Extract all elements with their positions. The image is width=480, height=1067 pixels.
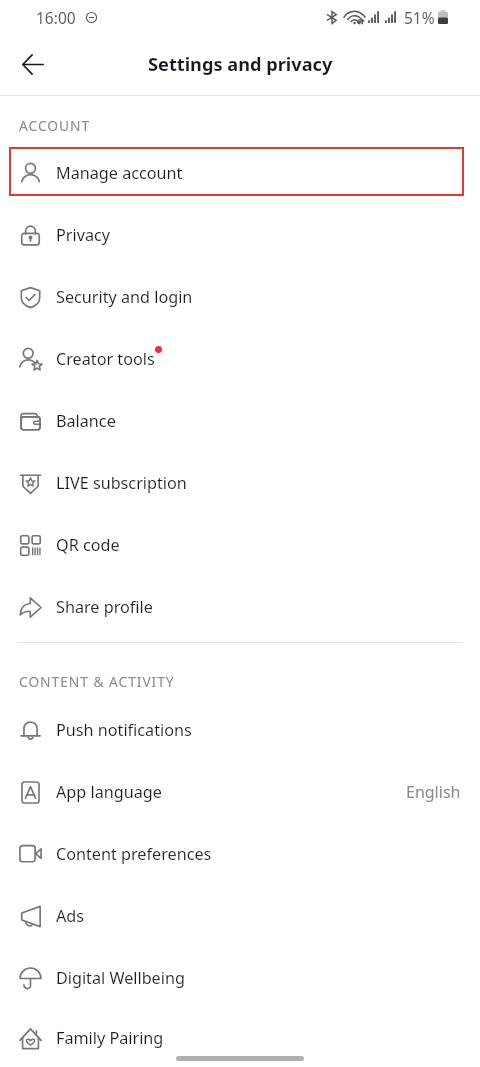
staticText: Push notifications — [56, 719, 192, 741]
button[interactable]: Ads — [0, 885, 480, 947]
button[interactable]: Family Pairing — [0, 1009, 480, 1067]
button[interactable]: Security and login — [0, 266, 480, 328]
button[interactable]: Share profile — [0, 576, 480, 638]
staticText: Balance — [56, 410, 116, 432]
staticText: CONTENT & ACTIVITY — [19, 672, 175, 691]
staticText: Privacy — [56, 224, 110, 246]
button[interactable]: Manage account — [0, 142, 480, 204]
staticText: Content preferences — [56, 843, 212, 865]
button[interactable]: Creator tools — [0, 328, 480, 390]
staticText: Digital Wellbeing — [56, 967, 185, 989]
staticText: App language — [56, 781, 162, 803]
button[interactable]: Push notifications — [0, 699, 480, 761]
button[interactable]: Digital Wellbeing — [0, 947, 480, 1009]
staticText: Ads — [56, 905, 85, 927]
staticText: English — [406, 781, 461, 803]
button[interactable]: LIVE subscription — [0, 452, 480, 514]
staticText: LIVE subscription — [56, 472, 187, 494]
staticText: 16:00 — [36, 7, 76, 28]
staticText: Creator tools — [56, 348, 155, 370]
button[interactable]: Back — [10, 41, 56, 87]
staticText: ACCOUNT — [19, 116, 91, 135]
staticText: QR code — [56, 534, 120, 556]
button[interactable]: Balance — [0, 390, 480, 452]
staticText: Security and login — [56, 286, 193, 308]
staticText: Manage account — [56, 162, 183, 184]
staticText: 51% — [404, 7, 435, 28]
button[interactable]: Content preferences — [0, 823, 480, 885]
staticText: Family Pairing — [56, 1027, 164, 1049]
staticText: Share profile — [56, 596, 153, 618]
button[interactable]: Privacy — [0, 204, 480, 266]
button[interactable]: QR code — [0, 514, 480, 576]
staticText: Settings and privacy — [148, 52, 333, 77]
button[interactable]: App language — [0, 761, 480, 823]
